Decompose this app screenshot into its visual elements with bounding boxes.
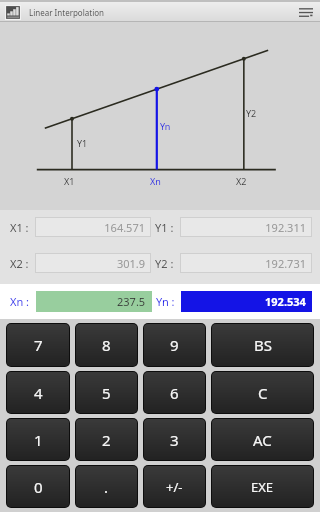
staticText: Y1 <box>77 137 88 149</box>
button[interactable]: C <box>212 372 313 413</box>
staticText: AC <box>253 430 272 450</box>
staticText: 3 <box>170 430 179 450</box>
button[interactable]: 8 <box>76 324 137 366</box>
button[interactable]: 7 <box>7 324 69 366</box>
staticText: +/- <box>166 478 183 496</box>
staticText: 4 <box>34 383 43 403</box>
staticText: . <box>104 477 109 497</box>
button[interactable]: 6 <box>144 372 205 413</box>
button[interactable]: BS <box>212 324 313 366</box>
staticText: 2 <box>102 430 111 450</box>
staticText: Yn <box>160 120 171 132</box>
staticText: Y2 : <box>155 256 174 271</box>
button[interactable]: 301.9 <box>35 253 151 273</box>
button[interactable]: More options <box>295 2 317 22</box>
staticText: 192.731 <box>265 256 306 271</box>
staticText: X2 : <box>10 256 29 271</box>
staticText: 7 <box>34 335 43 355</box>
staticText: BS <box>254 335 272 355</box>
staticText: 5 <box>102 383 111 403</box>
button[interactable]: 9 <box>144 324 205 366</box>
staticText: 6 <box>170 383 179 403</box>
staticText: X2 <box>236 175 247 187</box>
button[interactable]: +/- <box>144 466 205 507</box>
button[interactable]: 1 <box>7 419 69 460</box>
staticText: Y2 <box>246 107 257 119</box>
staticText: 192.311 <box>265 220 306 235</box>
button[interactable]: 5 <box>76 372 137 413</box>
staticText: 192.534 <box>265 294 306 309</box>
button[interactable]: 4 <box>7 372 69 413</box>
button[interactable]: 192.534 <box>181 291 312 312</box>
button[interactable]: 2 <box>76 419 137 460</box>
staticText: 0 <box>34 477 43 497</box>
staticText: 1 <box>34 430 43 450</box>
staticText: Xn <box>150 175 161 187</box>
staticText: Xn : <box>10 294 30 309</box>
button[interactable]: AC <box>212 419 313 460</box>
button[interactable]: 192.311 <box>180 217 312 237</box>
button[interactable]: 3 <box>144 419 205 460</box>
button[interactable]: 0 <box>7 466 69 507</box>
button[interactable]: 192.731 <box>180 253 312 273</box>
button[interactable]: 237.5 <box>36 291 152 312</box>
button[interactable]: 164.571 <box>35 217 151 237</box>
staticText: C <box>258 383 268 403</box>
staticText: 301.9 <box>116 256 145 271</box>
staticText: 8 <box>102 335 111 355</box>
staticText: 164.571 <box>104 220 145 235</box>
staticText: Yn : <box>156 294 175 309</box>
staticText: EXE <box>251 478 274 496</box>
button[interactable]: EXE <box>212 466 313 507</box>
staticText: 237.5 <box>117 294 146 309</box>
staticText: X1 : <box>10 220 29 235</box>
staticText: 9 <box>170 335 179 355</box>
staticText: Linear Interpolation <box>29 7 104 18</box>
staticText: X1 <box>64 175 75 187</box>
staticText: Y1 : <box>155 220 174 235</box>
button[interactable]: . <box>76 466 137 507</box>
